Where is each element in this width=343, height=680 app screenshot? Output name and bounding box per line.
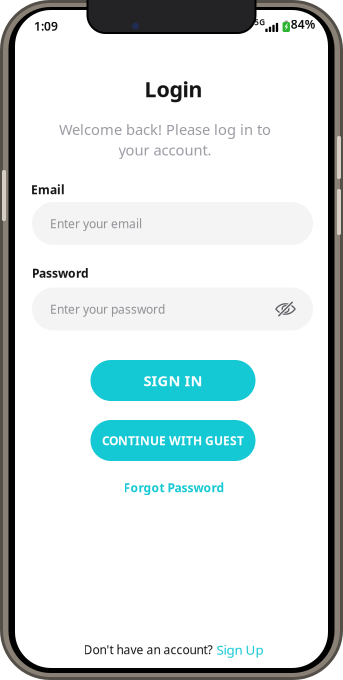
button[interactable]: Show password [275, 298, 296, 319]
staticText: Email [31, 181, 65, 197]
staticText: 1:09 [34, 18, 58, 34]
staticText: your account. [118, 140, 211, 159]
button[interactable]: SIGN IN [90, 360, 255, 401]
button[interactable]: Sign Up [216, 641, 263, 658]
staticText: Enter your email [50, 215, 142, 231]
staticText: Sign Up [216, 641, 263, 658]
staticText: CONTINUE WITH GUEST [102, 432, 244, 448]
staticText: Don't have an account? [83, 641, 212, 657]
button[interactable]: CONTINUE WITH GUEST [90, 420, 255, 461]
staticText: Welcome back! Please log in to [59, 119, 271, 139]
staticText: 84% [291, 16, 316, 32]
staticText: Enter your password [50, 301, 165, 317]
staticText: Login [144, 75, 202, 103]
staticText: 5G [254, 17, 265, 27]
button[interactable]: Forgot Password [114, 478, 234, 496]
staticText: SIGN IN [143, 371, 202, 390]
staticText: Forgot Password [123, 479, 224, 495]
staticText: Password [32, 265, 89, 281]
